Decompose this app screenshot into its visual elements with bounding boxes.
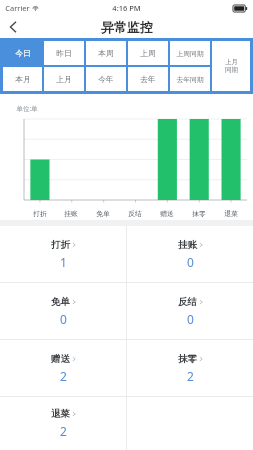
staticText: 退菜 — [51, 408, 70, 420]
button[interactable]: 昨日 — [44, 41, 84, 65]
button[interactable]: 挂账 — [127, 226, 253, 282]
staticText: 上周 — [140, 48, 156, 58]
staticText: 抹零 — [192, 209, 206, 218]
button[interactable]: 抹零 — [127, 340, 253, 396]
button[interactable]: 今年 — [86, 67, 126, 91]
staticText: 赠送 — [160, 209, 174, 218]
staticText: 赠送 — [51, 353, 70, 365]
button[interactable]: 打折 — [0, 226, 126, 282]
staticText: 抹零 — [178, 353, 197, 365]
staticText: 单位:单 — [16, 104, 38, 113]
staticText: 本月 — [15, 74, 31, 84]
staticText: 同期 — [225, 66, 238, 74]
staticText: 反结 — [178, 296, 197, 308]
staticText: 打折 — [51, 239, 70, 251]
button[interactable]: 反结 — [127, 283, 253, 339]
staticText: 今年 — [98, 74, 114, 84]
button[interactable]: 上周 — [128, 41, 168, 65]
button[interactable]: 去年 — [128, 67, 168, 91]
button[interactable]: Back — [0, 16, 26, 38]
staticText: 免单 — [51, 296, 70, 308]
staticText: 去年同期 — [176, 75, 204, 84]
staticText: 去年 — [140, 74, 156, 84]
button[interactable]: 本月 — [3, 67, 42, 91]
staticText: 2 — [60, 423, 67, 439]
staticText: 免单 — [96, 209, 110, 218]
staticText: 打折 — [33, 209, 47, 218]
staticText: 异常监控 — [101, 19, 153, 35]
button[interactable]: 今日 — [3, 41, 42, 65]
button[interactable]: 上月 — [212, 41, 250, 91]
staticText: 2 — [60, 368, 67, 384]
button[interactable]: 去年同期 — [170, 67, 210, 91]
button[interactable]: 上月 — [44, 67, 84, 91]
staticText: Carrier — [5, 3, 30, 13]
staticText: 0 — [60, 311, 67, 327]
staticText: 1 — [60, 254, 67, 270]
staticText: 挂账 — [64, 209, 78, 218]
staticText: 挂账 — [178, 239, 197, 251]
button[interactable]: 免单 — [0, 283, 126, 339]
staticText: 退菜 — [224, 209, 238, 218]
staticText: 上周同期 — [176, 49, 204, 58]
staticText: 上月 — [56, 74, 72, 84]
button[interactable]: 退菜 — [0, 397, 126, 450]
button[interactable]: 上周同期 — [170, 41, 210, 65]
button[interactable]: 赠送 — [0, 340, 126, 396]
staticText: 昨日 — [56, 48, 72, 58]
staticText: 反结 — [128, 209, 142, 218]
staticText: 本周 — [98, 48, 114, 58]
staticText: 4:16 PM — [112, 3, 141, 13]
staticText: 上月 — [225, 58, 238, 66]
button[interactable]: 本周 — [86, 41, 126, 65]
staticText: 今日 — [15, 48, 31, 58]
staticText: 0 — [187, 311, 194, 327]
staticText: 0 — [187, 254, 194, 270]
staticText: 2 — [187, 368, 194, 384]
